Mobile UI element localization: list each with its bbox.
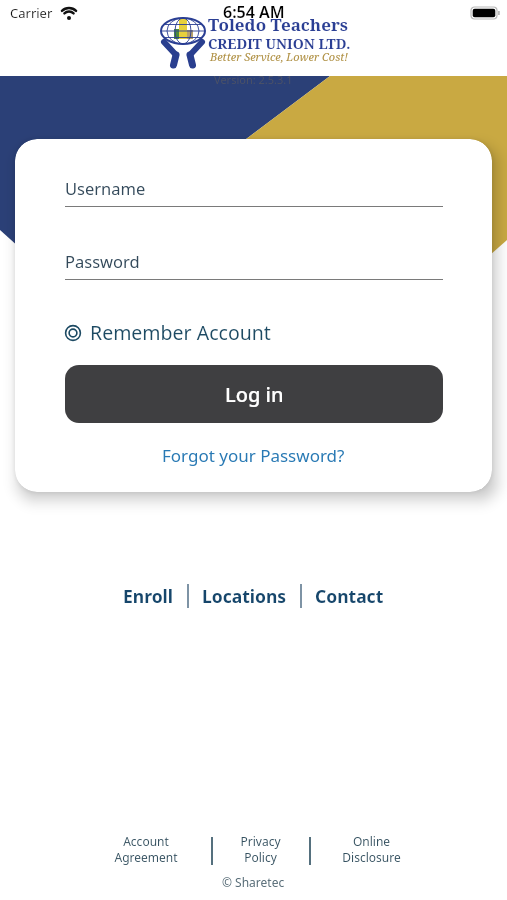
staticText: Version: 2.5.3.1 [214,72,293,87]
button[interactable]: Contact [315,584,384,608]
staticText: Toledo Teachers [208,13,348,36]
button[interactable]: Password [65,250,443,286]
button[interactable]: Log in [65,365,443,423]
staticText: Contact [315,584,384,608]
staticText: Password [65,250,140,272]
button[interactable]: Forgot your Password? [162,444,345,467]
staticText: Log in [225,381,284,408]
button[interactable]: Enroll [123,584,174,608]
staticText: Forgot your Password? [162,444,345,467]
staticText: Username [65,177,146,199]
staticText: Online Disclosure [342,833,401,865]
staticText: Remember Account [90,319,271,346]
staticText: © Sharetec [222,874,285,890]
button[interactable]: Privacy Policy [200,833,320,865]
staticText: Locations [202,584,287,608]
staticText: Better Service, Lower Cost! [210,49,348,64]
staticText: Carrier [10,4,53,22]
button[interactable]: Username [65,177,443,213]
button[interactable]: Account Agreement [86,833,206,865]
button[interactable]: Remember Account [65,319,271,346]
button[interactable]: Online Disclosure [311,833,431,865]
staticText: Privacy Policy [240,833,281,865]
staticText: Enroll [123,584,174,608]
staticText: Account Agreement [114,833,178,865]
button[interactable]: Locations [202,584,287,608]
staticText: 6:54 AM [223,1,285,23]
staticText: CREDIT UNION LTD. [208,34,351,53]
